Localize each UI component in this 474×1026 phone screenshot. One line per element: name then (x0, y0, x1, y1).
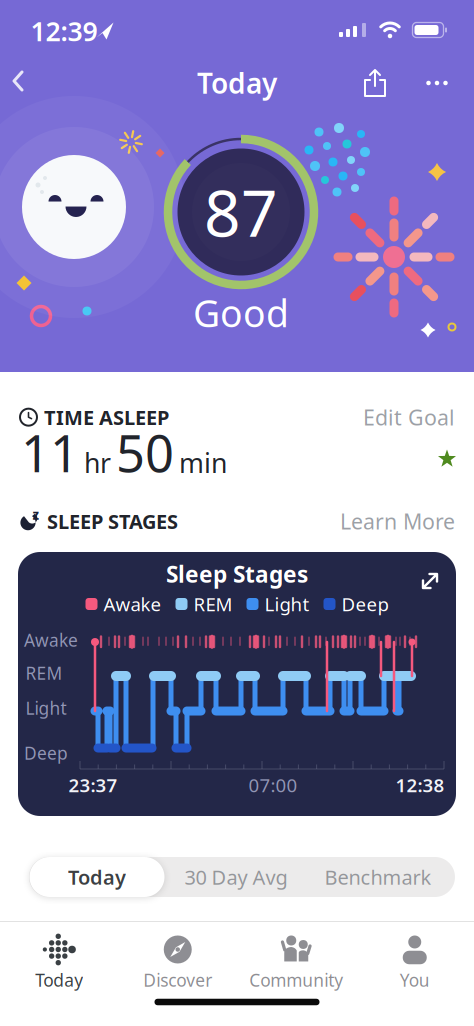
staticText: Edit Goal (363, 403, 455, 431)
staticText: 87 (204, 169, 278, 254)
staticText: REM (25, 661, 62, 684)
staticText: TIME ASLEEP (44, 404, 169, 430)
staticText: hr (84, 445, 111, 480)
staticText: 23:37 (68, 773, 117, 797)
staticText: Discover (143, 968, 212, 991)
staticText: Sleep Stages (166, 559, 308, 589)
staticText: 11 (21, 419, 79, 486)
button[interactable]: Benchmark (324, 864, 431, 890)
staticText: Good (193, 288, 289, 338)
staticText: Deep (341, 592, 388, 616)
staticText: z (32, 506, 39, 523)
button[interactable]: Community (237, 921, 355, 987)
button[interactable]: Discover (118, 921, 237, 987)
staticText: Community (249, 968, 343, 991)
staticText: 07:00 (248, 773, 297, 797)
staticText: You (400, 968, 430, 991)
button[interactable]: Today (29, 857, 164, 897)
button[interactable]: You (355, 921, 474, 987)
staticText: Awake (103, 592, 161, 616)
button[interactable]: Learn More (340, 507, 455, 535)
staticText: min (179, 445, 227, 480)
staticText: Awake (24, 628, 78, 651)
staticText: SLEEP STAGES (47, 508, 178, 534)
staticText: 30 Day Avg (184, 864, 287, 890)
staticText: Learn More (340, 507, 455, 535)
button[interactable]: Share (362, 68, 388, 98)
staticText: Benchmark (324, 864, 431, 890)
button[interactable]: Edit Goal (363, 403, 455, 431)
staticText: Today (35, 968, 83, 991)
staticText: Light (264, 592, 309, 616)
staticText: 12:38 (395, 773, 444, 797)
staticText: Today (197, 64, 277, 102)
button[interactable]: Today (0, 921, 118, 987)
button[interactable]: More (426, 81, 448, 85)
staticText: Light (25, 696, 66, 719)
button[interactable]: Expand (419, 570, 441, 592)
staticText: Today (68, 864, 126, 890)
staticText: 12:39 (30, 13, 97, 49)
button[interactable]: 30 Day Avg (184, 864, 287, 890)
staticText: REM (193, 592, 232, 616)
button[interactable]: Back (14, 72, 30, 94)
staticText: Deep (24, 741, 68, 764)
staticText: 50 (116, 419, 174, 486)
